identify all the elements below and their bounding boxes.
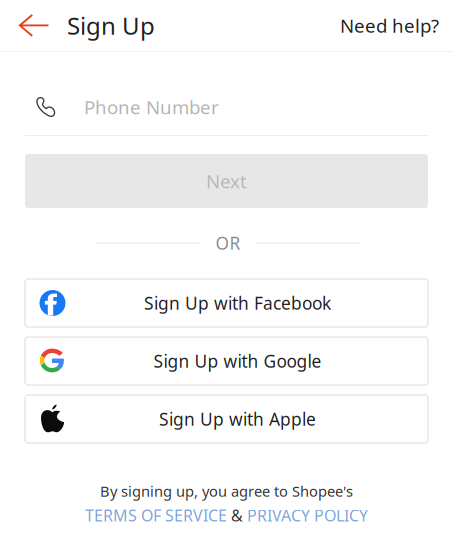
staticText: Next	[206, 169, 247, 193]
staticText: TERMS OF SERVICE	[85, 505, 227, 526]
staticText: Phone Number	[84, 95, 219, 119]
button[interactable]: Next	[25, 154, 428, 208]
staticText: PRIVACY POLICY	[247, 505, 368, 526]
staticText: Sign Up with Facebook	[144, 291, 331, 314]
staticText: Sign Up with Apple	[159, 407, 316, 430]
button[interactable]: Sign Up with Facebook	[25, 279, 428, 327]
staticText: &	[231, 505, 243, 526]
staticText: Sign Up with Google	[153, 349, 321, 372]
staticText: By signing up, you agree to Shopee's	[100, 481, 353, 501]
button[interactable]: Need help?	[340, 0, 453, 51]
staticText: Sign Up	[67, 10, 155, 41]
staticText: Need help?	[340, 13, 439, 38]
button[interactable]: Back	[0, 0, 67, 51]
button[interactable]: TERMS OF SERVICE	[85, 505, 227, 526]
button[interactable]: Sign Up with Apple	[25, 395, 428, 443]
staticText: OR	[215, 231, 240, 254]
button[interactable]: PRIVACY POLICY	[247, 505, 368, 526]
button[interactable]: Sign Up with Google	[25, 337, 428, 385]
